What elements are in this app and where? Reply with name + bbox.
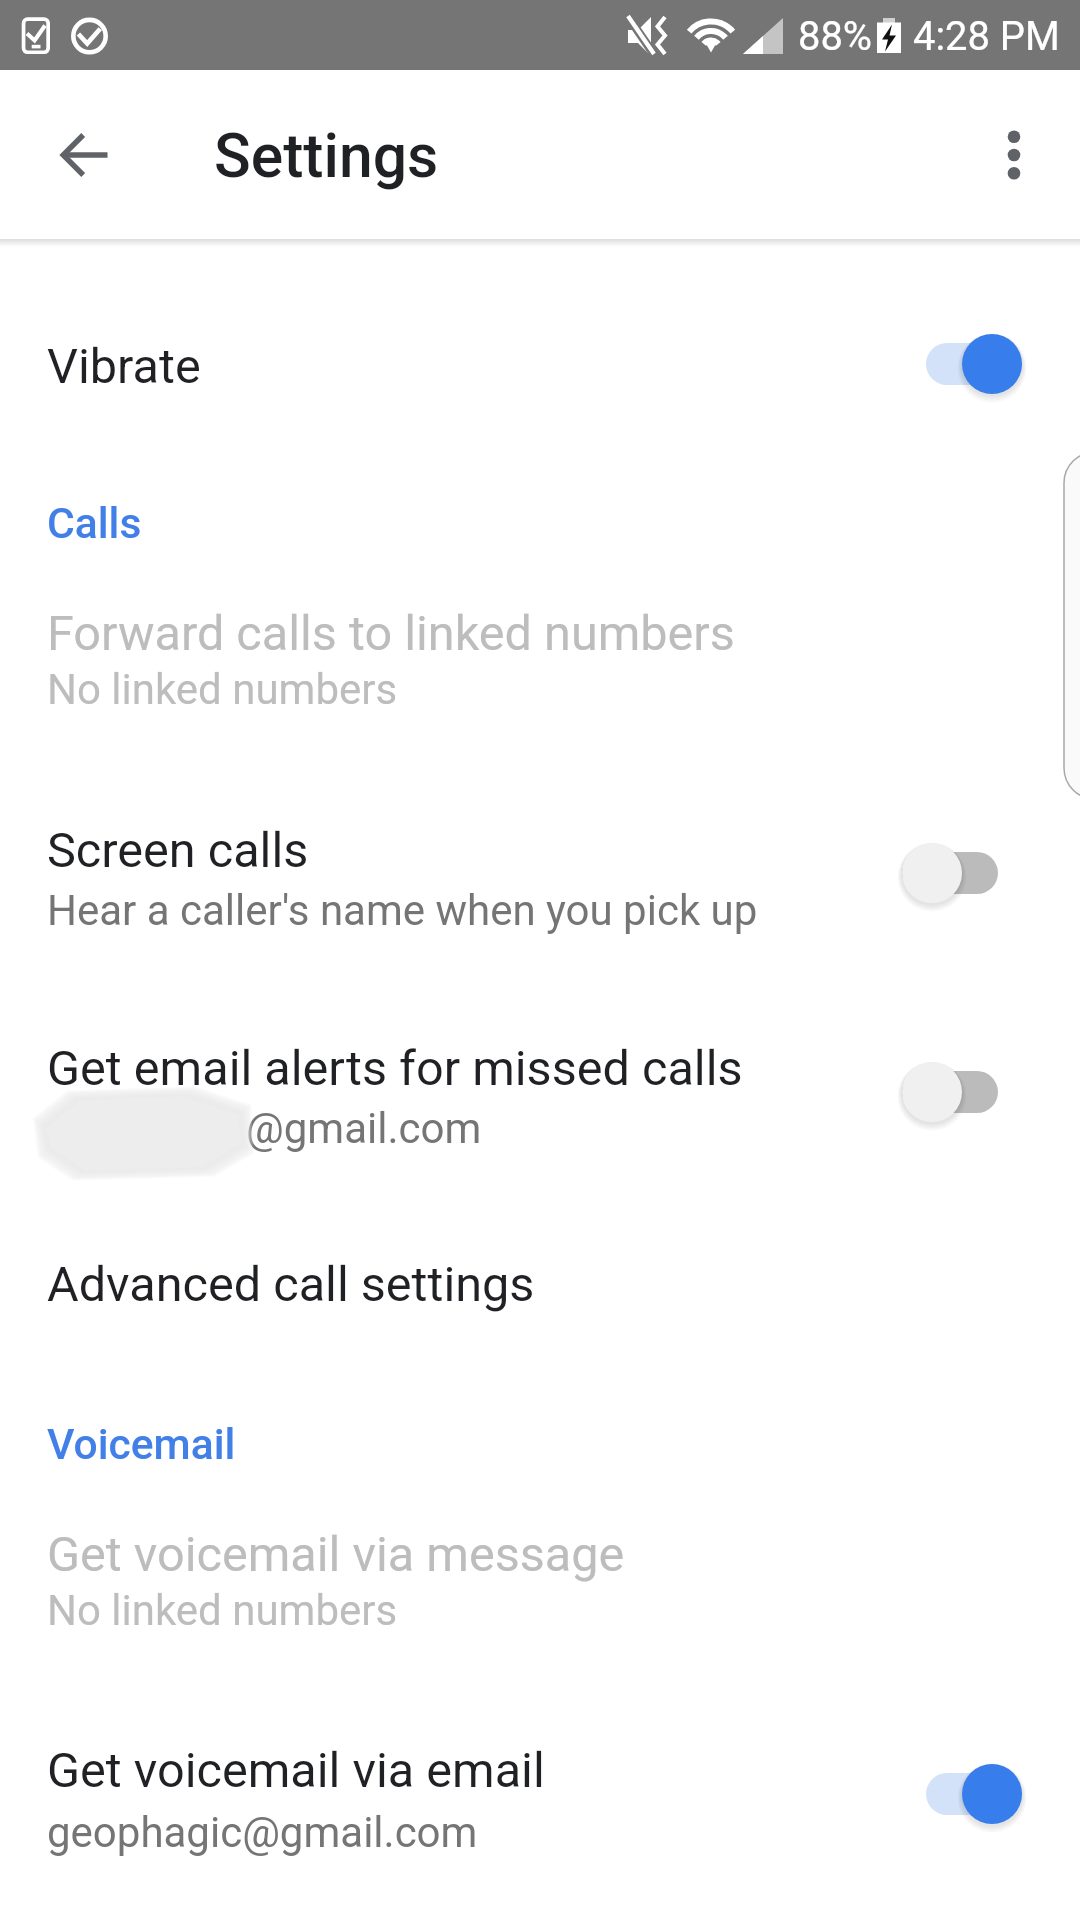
staticText: geophagic@gmail.com — [47, 1808, 478, 1857]
staticText: Advanced call settings — [47, 1256, 535, 1313]
staticText: Voicemail — [47, 1419, 236, 1469]
staticText: Get voicemail via email — [47, 1742, 545, 1799]
staticText: 4:28 PM — [913, 13, 1060, 60]
staticText: Vibrate — [47, 338, 201, 395]
button[interactable]: Advanced call settings — [0, 1230, 1080, 1340]
staticText: Settings — [214, 121, 439, 192]
button[interactable]: Get email alerts for missed calls — [875, 1032, 1025, 1152]
button[interactable]: More options — [954, 95, 1074, 215]
button[interactable]: Forward calls to linked numbers — [0, 570, 1080, 740]
staticText: @gmail.com — [246, 1104, 482, 1153]
staticText: Forward calls to linked numbers — [47, 605, 735, 662]
button[interactable]: Vibrate — [0, 240, 1080, 452]
button[interactable]: Navigate up — [24, 95, 144, 215]
button[interactable]: Get voicemail via email — [899, 1734, 1049, 1854]
button[interactable]: Get email alerts for missed calls — [0, 1005, 1080, 1185]
staticText: Get voicemail via message — [47, 1526, 625, 1583]
staticText: Calls — [47, 498, 142, 548]
staticText: Get email alerts for missed calls — [47, 1040, 743, 1097]
button[interactable]: Screen calls — [0, 790, 1080, 960]
button[interactable]: Screen calls — [875, 813, 1025, 933]
staticText: 88% — [798, 13, 873, 60]
staticText: No linked numbers — [47, 1586, 398, 1635]
staticText: No linked numbers — [47, 665, 398, 714]
button[interactable]: Get voicemail via message — [0, 1490, 1080, 1660]
staticText: Screen calls — [47, 822, 309, 879]
staticText: Hear a caller's name when you pick up — [47, 886, 758, 935]
button[interactable]: Vibrate — [899, 304, 1049, 424]
button[interactable]: Get voicemail via email — [0, 1710, 1080, 1880]
